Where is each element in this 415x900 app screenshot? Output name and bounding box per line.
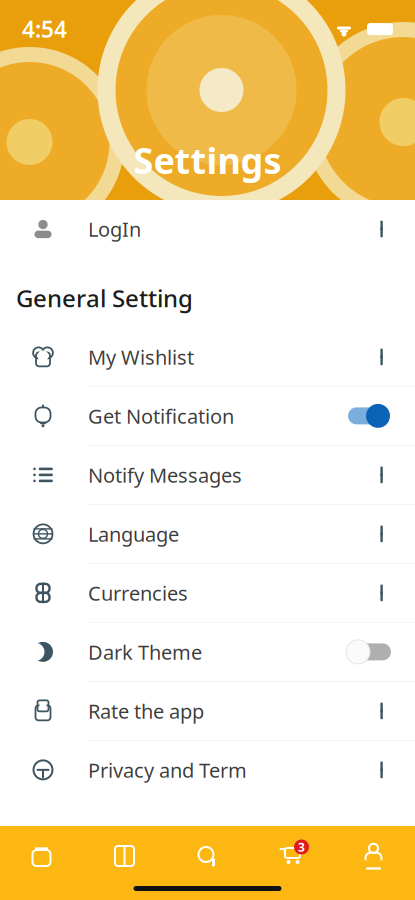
staticText: Notify Messages — [88, 462, 242, 488]
button[interactable]: Home — [0, 834, 83, 878]
staticText: Privacy and Term — [88, 757, 247, 783]
button[interactable]: Privacy and Term — [0, 741, 415, 799]
button[interactable]: Catalog — [83, 834, 166, 878]
staticText: 3 — [298, 839, 305, 855]
staticText: Currencies — [88, 580, 188, 606]
button[interactable]: Notify Messages — [0, 446, 415, 505]
button[interactable]: Profile — [332, 834, 415, 878]
button[interactable]: Dark Theme — [0, 623, 415, 682]
button[interactable]: Language — [0, 505, 415, 564]
button[interactable]: Currencies — [0, 564, 415, 623]
button[interactable]: Rate the app — [0, 682, 415, 741]
staticText: Dark Theme — [88, 639, 202, 665]
staticText: General Setting — [16, 282, 193, 314]
staticText: Settings — [133, 136, 281, 184]
button[interactable]: Cart, 3 items — [249, 834, 332, 878]
staticText: 4:54 — [22, 14, 67, 44]
staticText: Language — [88, 521, 179, 547]
button[interactable]: LogIn — [0, 200, 415, 258]
staticText: Rate the app — [88, 698, 204, 724]
button[interactable]: Get Notification — [0, 387, 415, 446]
button[interactable]: Search — [166, 834, 249, 878]
staticText: My Wishlist — [88, 344, 194, 370]
staticText: Get Notification — [88, 403, 234, 429]
button[interactable]: My Wishlist — [0, 328, 415, 387]
staticText: LogIn — [88, 216, 141, 242]
